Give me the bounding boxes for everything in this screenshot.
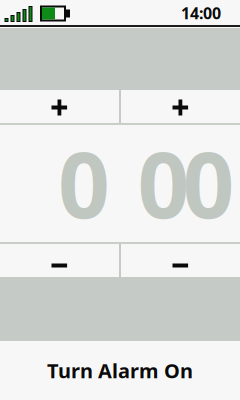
staticText: 14:00 bbox=[181, 2, 221, 24]
staticText: Turn Alarm On bbox=[47, 357, 193, 384]
button[interactable]: Turn Alarm On bbox=[0, 341, 240, 400]
staticText: 0 bbox=[58, 123, 110, 243]
button[interactable]: Decrease hours bbox=[0, 244, 119, 277]
button[interactable]: Increase minutes bbox=[121, 90, 240, 123]
button[interactable]: Decrease minutes bbox=[121, 244, 240, 277]
staticText: 0 bbox=[182, 123, 234, 243]
button[interactable]: Increase hours bbox=[0, 90, 119, 123]
staticText: 0 bbox=[137, 123, 189, 243]
